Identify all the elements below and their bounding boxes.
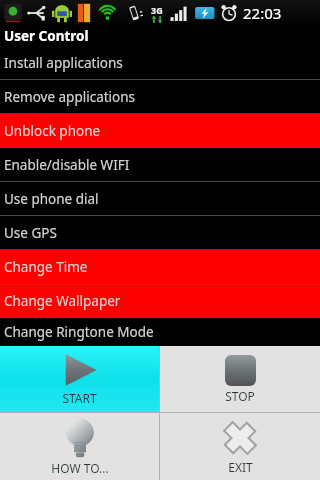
staticText: Change Wallpaper — [4, 292, 121, 310]
staticText: 3G — [151, 4, 163, 16]
staticText: Use GPS — [4, 224, 57, 242]
button[interactable]: Unblock phone — [0, 114, 320, 147]
staticText: HOW TO... — [51, 460, 109, 476]
button[interactable]: Change Wallpaper — [0, 284, 320, 317]
staticText: EXIT — [228, 459, 253, 475]
button[interactable]: Remove applications — [0, 80, 320, 113]
staticText: Remove applications — [4, 88, 136, 106]
button[interactable]: STOP — [160, 346, 320, 412]
staticText: Use phone dial — [4, 190, 99, 208]
button[interactable]: EXIT — [160, 413, 320, 480]
staticText: Unblock phone — [4, 122, 101, 140]
button[interactable]: HOW TO... — [0, 413, 159, 480]
button[interactable]: Use GPS — [0, 216, 320, 249]
staticText: Change Ringtone Mode — [4, 323, 154, 341]
staticText: START — [62, 390, 97, 406]
staticText: Enable/disable WIFI — [4, 156, 130, 174]
button[interactable]: Enable/disable WIFI — [0, 148, 320, 181]
staticText: STOP — [225, 388, 255, 404]
staticText: Change Time — [4, 258, 88, 276]
staticText: 22:03 — [243, 3, 282, 23]
button[interactable]: Install applications — [0, 46, 320, 79]
button[interactable]: Use phone dial — [0, 182, 320, 215]
button[interactable]: Change Ringtone Mode — [0, 318, 320, 346]
button[interactable]: START — [0, 346, 159, 412]
button[interactable]: Change Time — [0, 250, 320, 283]
staticText: User Control — [4, 27, 89, 45]
staticText: Install applications — [4, 54, 123, 72]
